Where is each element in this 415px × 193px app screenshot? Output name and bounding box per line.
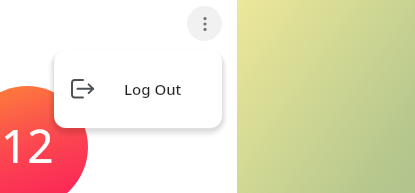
staticText: 12 bbox=[1, 114, 54, 177]
staticText: Log Out bbox=[124, 79, 182, 99]
button[interactable]: More options bbox=[187, 6, 222, 41]
button[interactable]: Log Out bbox=[54, 50, 222, 128]
